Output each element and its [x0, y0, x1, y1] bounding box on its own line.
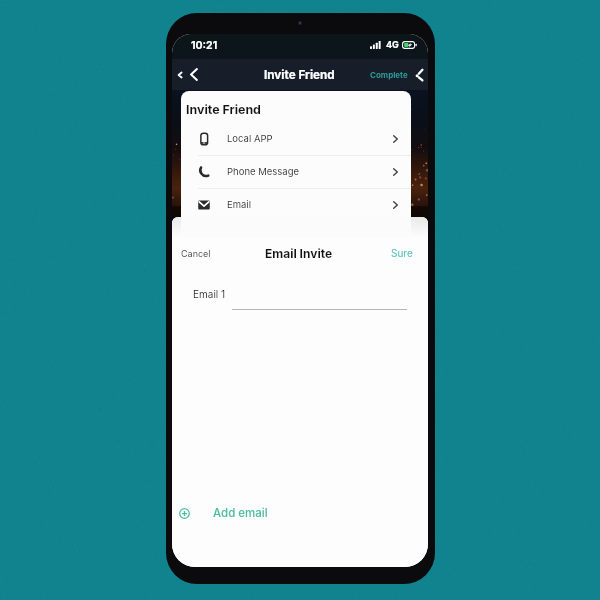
staticText: Email 1 [193, 288, 226, 300]
button[interactable]: Back [184, 62, 204, 87]
staticText: Email Invite [265, 246, 333, 261]
staticText: Phone Message [227, 166, 300, 177]
staticText: 10:21 [191, 39, 218, 52]
button[interactable]: Phone Message [181, 156, 411, 188]
button[interactable]: Complete [368, 62, 410, 87]
staticText: Local APP [227, 133, 273, 144]
staticText: Invite Friend [186, 102, 261, 117]
button[interactable]: Sure [386, 242, 418, 264]
staticText: Complete [370, 70, 408, 80]
button[interactable]: Local APP [181, 123, 411, 155]
button[interactable]: Email [181, 189, 411, 221]
staticText: Cancel [181, 248, 211, 259]
staticText: 4G [386, 39, 399, 50]
button[interactable]: Share [413, 63, 425, 86]
staticText: Invite Friend [264, 68, 335, 82]
staticText: Email [227, 199, 251, 210]
button[interactable]: Add email [174, 500, 282, 526]
staticText: Add email [213, 506, 268, 520]
button[interactable]: Cancel [176, 243, 216, 264]
staticText: Sure [391, 247, 413, 259]
